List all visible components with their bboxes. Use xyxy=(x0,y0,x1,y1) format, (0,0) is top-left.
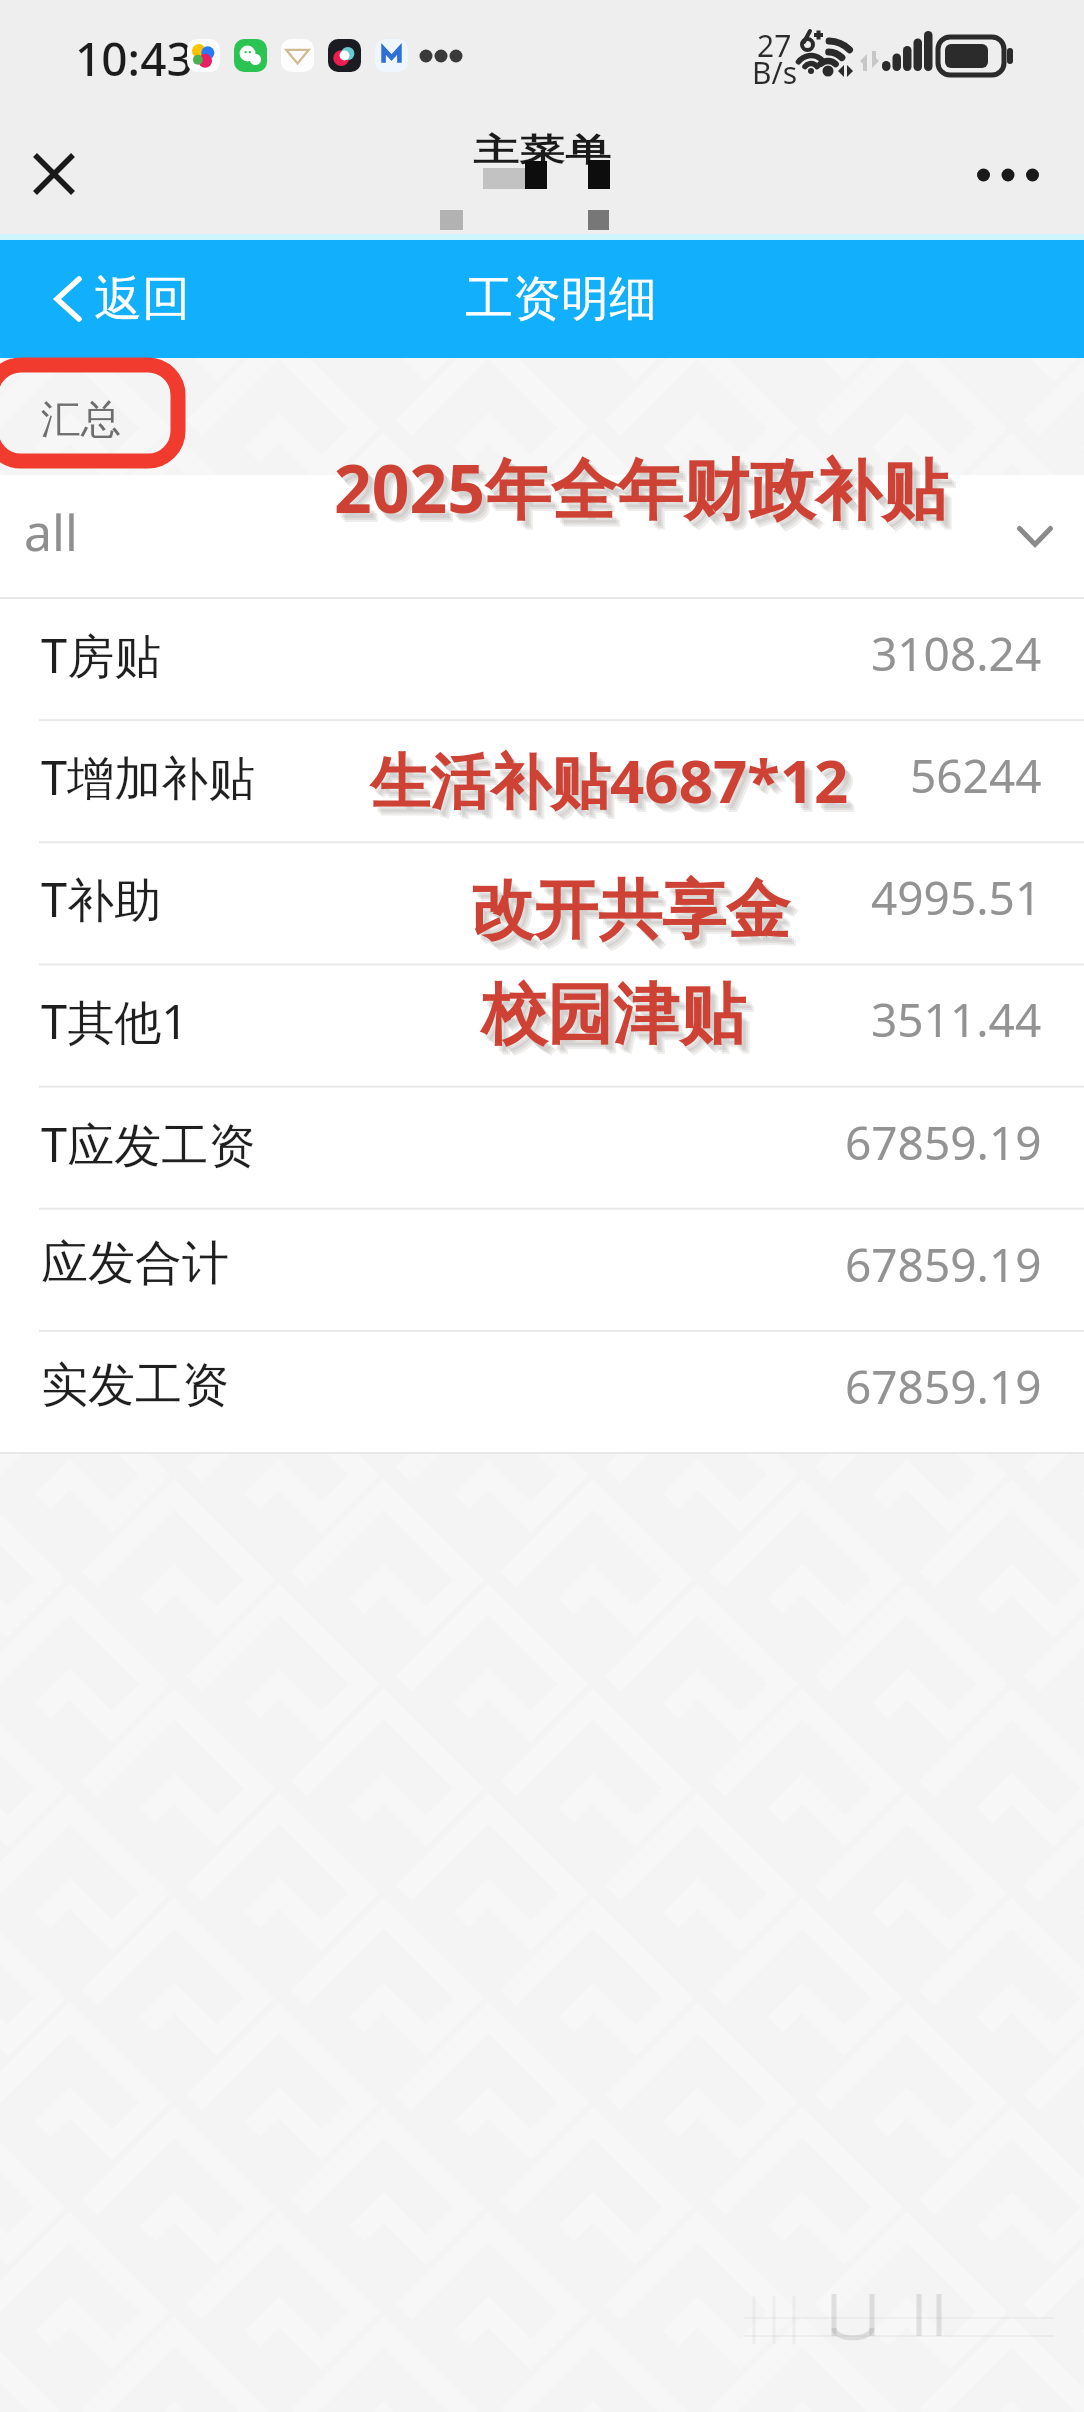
staticText: 67859.19 xyxy=(845,1111,1042,1174)
staticText: 改开共享金 xyxy=(478,879,798,960)
staticText: 校园津贴 xyxy=(487,980,751,1063)
button[interactable]: T补助 xyxy=(0,841,1084,963)
staticText: T其他1 xyxy=(41,989,189,1053)
button[interactable]: Expand xyxy=(995,493,1075,579)
staticText: 主菜单 xyxy=(473,130,611,171)
staticText: 改开共享金 xyxy=(470,870,790,951)
staticText: T增加补贴 xyxy=(41,745,256,809)
staticText: 3108.24 xyxy=(871,622,1042,685)
staticText: 2025年全年财政补贴 xyxy=(338,447,952,537)
staticText: 生活补贴4687*12 xyxy=(378,748,857,830)
staticText: T补助 xyxy=(41,867,162,931)
button[interactable]: 应发合计 xyxy=(0,1208,1084,1330)
staticText: 27 xyxy=(757,25,792,66)
staticText: 2025年全年财政补贴 xyxy=(342,451,956,541)
staticText: T应发工资 xyxy=(41,1112,256,1176)
staticText: 校园津贴 xyxy=(485,978,749,1061)
staticText: 67859.19 xyxy=(845,1355,1042,1418)
staticText: 4995.51 xyxy=(871,866,1042,929)
staticText: T房贴 xyxy=(41,623,162,687)
staticText: 改开共享金 xyxy=(476,877,796,958)
staticText: 生活补贴4687*12 xyxy=(370,739,849,821)
staticText: B/s xyxy=(752,52,798,93)
button[interactable]: 返回 xyxy=(54,269,190,329)
staticText: 生活补贴4687*12 xyxy=(374,744,853,826)
staticText: 返回 xyxy=(94,269,190,329)
staticText: 校园津贴 xyxy=(489,982,753,1065)
button[interactable]: T增加补贴 xyxy=(0,719,1084,841)
staticText: 3511.44 xyxy=(871,988,1042,1051)
staticText: 生活补贴4687*12 xyxy=(376,746,855,828)
button[interactable]: 汇总 xyxy=(6,379,156,459)
button[interactable]: T房贴 xyxy=(0,597,1084,719)
staticText: 工资明细 xyxy=(465,269,657,329)
staticText: 2025年全年财政补贴 xyxy=(340,449,954,539)
staticText: 应发合计 xyxy=(41,1234,229,1293)
staticText: 67859.19 xyxy=(845,1233,1042,1296)
staticText: all xyxy=(24,498,78,566)
staticText: 2025年全年财政补贴 xyxy=(334,442,948,532)
button[interactable]: all xyxy=(0,475,1084,597)
button[interactable]: More options xyxy=(963,130,1053,220)
button[interactable]: T应发工资 xyxy=(0,1086,1084,1208)
staticText: 56244 xyxy=(910,744,1042,807)
button[interactable]: 实发工资 xyxy=(0,1330,1084,1452)
staticText: 10:43 xyxy=(75,27,193,90)
button[interactable]: T其他1 xyxy=(0,963,1084,1085)
staticText: 校园津贴 xyxy=(481,973,745,1056)
staticText: 汇总 xyxy=(41,394,121,444)
staticText: 改开共享金 xyxy=(474,875,794,956)
staticText: 实发工资 xyxy=(41,1356,229,1415)
button[interactable]: Close xyxy=(10,130,98,218)
